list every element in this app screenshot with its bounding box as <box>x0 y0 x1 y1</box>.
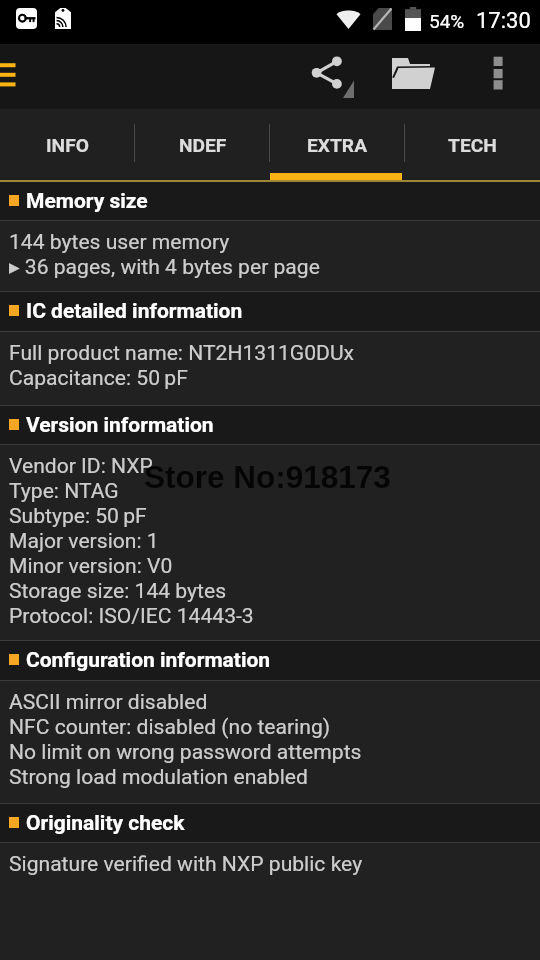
button[interactable]: NDEF <box>135 109 270 182</box>
button[interactable]: Share <box>300 46 358 104</box>
staticText: Full product name: NT2H1311G0DUx <box>9 340 355 365</box>
staticText: Major version: 1 <box>9 528 159 553</box>
staticText: Version information <box>26 413 214 438</box>
staticText: Minor version: V0 <box>9 553 173 578</box>
button[interactable]: EXTRA <box>270 109 405 182</box>
staticText: 17:30 <box>476 8 531 34</box>
staticText: NFC counter: disabled (no tearing) <box>9 714 331 739</box>
button[interactable]: INFO <box>0 109 135 182</box>
staticText: 54% <box>429 10 465 32</box>
staticText: Memory size <box>26 189 148 214</box>
staticText: Originality check <box>26 811 185 836</box>
button[interactable]: Navigation menu <box>0 48 38 108</box>
staticText: Strong load modulation enabled <box>9 764 308 789</box>
staticText: 144 bytes user memory <box>9 229 230 254</box>
button[interactable]: TECH <box>405 109 540 182</box>
staticText: Subtype: 50 pF <box>9 503 147 528</box>
staticText: IC detailed information <box>26 299 243 324</box>
staticText: ASCII mirror disabled <box>9 689 208 714</box>
staticText: TECH <box>448 134 497 157</box>
staticText: No limit on wrong password attempts <box>9 739 362 764</box>
staticText: Vendor ID: NXP <box>9 453 153 478</box>
staticText: EXTRA <box>307 134 368 157</box>
staticText: Type: NTAG <box>9 478 119 503</box>
staticText: Protocol: ISO/IEC 14443-3 <box>9 603 254 628</box>
staticText: INFO <box>46 134 89 157</box>
staticText: Store No:918173 <box>144 459 391 494</box>
staticText: NDEF <box>179 134 227 157</box>
staticText: Configuration information <box>26 648 271 673</box>
staticText: Storage size: 144 bytes <box>9 578 227 603</box>
staticText: ▸ 36 pages, with 4 bytes per page <box>9 254 320 279</box>
staticText: Signature verified with NXP public key <box>9 851 363 876</box>
button[interactable]: Open file <box>380 46 442 106</box>
staticText: Capacitance: 50 pF <box>9 365 188 390</box>
button[interactable]: More options <box>474 48 522 96</box>
